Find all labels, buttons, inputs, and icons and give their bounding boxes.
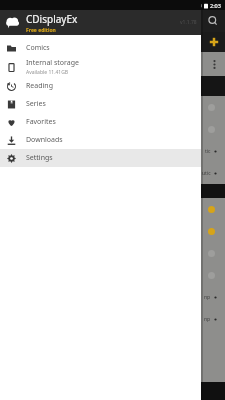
button[interactable] bbox=[0, 118, 225, 140]
button[interactable]: CDisplayEx bbox=[0, 10, 201, 35]
button[interactable]: tic bbox=[0, 140, 225, 162]
staticText: Free edition bbox=[26, 27, 56, 34]
other: Settings bbox=[7, 154, 16, 163]
button[interactable] bbox=[0, 198, 225, 220]
button[interactable]: Downloads bbox=[0, 131, 201, 149]
staticText: Comics bbox=[26, 43, 50, 53]
button[interactable]: Comics bbox=[0, 39, 201, 57]
staticText: Available 11.41GB bbox=[26, 69, 69, 76]
button[interactable]: np bbox=[0, 286, 225, 308]
button[interactable]: utic bbox=[0, 162, 225, 184]
button[interactable] bbox=[0, 264, 225, 286]
button[interactable] bbox=[0, 220, 225, 242]
button[interactable]: np bbox=[0, 308, 225, 330]
other: Series bbox=[7, 100, 16, 109]
button[interactable] bbox=[0, 96, 225, 118]
other: Internal storage bbox=[7, 63, 16, 72]
staticText: Reading bbox=[26, 81, 53, 91]
button[interactable]: Settings bbox=[0, 149, 201, 167]
staticText: Internal storage bbox=[26, 58, 79, 68]
button[interactable]: Reading bbox=[0, 77, 201, 95]
button[interactable]: Add bbox=[207, 35, 221, 49]
staticText: utic bbox=[202, 170, 211, 177]
other: Reading bbox=[7, 82, 16, 91]
staticText: 2:03 bbox=[210, 2, 221, 9]
button[interactable]: Internal storage bbox=[0, 57, 201, 77]
staticText: Favorites bbox=[26, 117, 56, 127]
staticText: v1.1.78 bbox=[180, 19, 197, 26]
button[interactable]: Search bbox=[207, 15, 219, 27]
staticText: np bbox=[204, 294, 211, 301]
button[interactable]: Favorites bbox=[0, 113, 201, 131]
staticText: tic bbox=[205, 148, 211, 155]
button[interactable] bbox=[0, 242, 225, 264]
staticText: CDisplayEx bbox=[26, 12, 78, 26]
other: Favorites bbox=[7, 118, 16, 127]
staticText: Downloads bbox=[26, 135, 63, 145]
staticText: Series bbox=[26, 99, 46, 109]
other: Comics bbox=[7, 44, 16, 53]
other: Downloads bbox=[7, 136, 16, 145]
button[interactable]: Series bbox=[0, 95, 201, 113]
staticText: Settings bbox=[26, 153, 53, 163]
staticText: np bbox=[204, 316, 211, 323]
